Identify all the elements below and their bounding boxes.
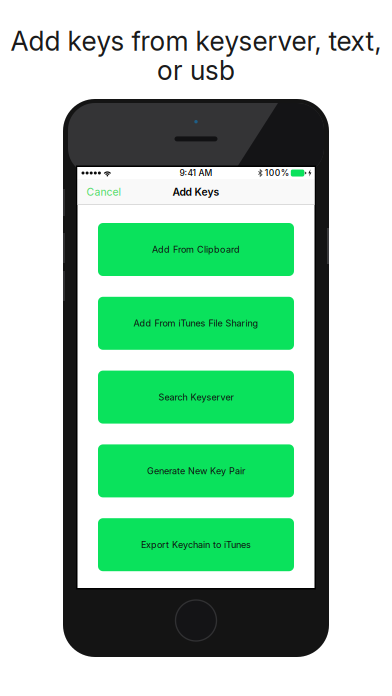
button[interactable]: Generate New Key Pair <box>98 444 294 497</box>
staticText: or usb <box>157 54 235 87</box>
staticText: Cancel <box>86 186 121 198</box>
staticText: Generate New Key Pair <box>147 465 245 476</box>
staticText: Add keys from keyserver, text, <box>10 25 381 57</box>
staticText: 100% <box>265 168 289 178</box>
staticText: Add From iTunes File Sharing <box>133 318 258 329</box>
staticText: Export Keychain to iTunes <box>141 539 251 550</box>
button[interactable]: Add From iTunes File Sharing <box>98 297 294 350</box>
staticText: Add From Clipboard <box>152 244 240 255</box>
staticText: 9:41 AM <box>179 168 212 178</box>
button[interactable]: Add From Clipboard <box>98 223 294 276</box>
staticText: Add Keys <box>172 186 219 198</box>
staticText: Search Keyserver <box>158 392 233 403</box>
button[interactable]: Search Keyserver <box>98 371 294 424</box>
button[interactable]: Export Keychain to iTunes <box>98 518 294 571</box>
button[interactable]: Cancel <box>77 179 130 205</box>
